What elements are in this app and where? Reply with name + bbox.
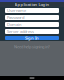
button[interactable]: Domain	[5, 22, 59, 27]
staticText: Server address	[7, 29, 34, 34]
staticText: Need help signing in?	[14, 44, 50, 49]
button[interactable]: Username	[5, 8, 59, 13]
button[interactable]: Password	[5, 15, 59, 20]
staticText: Sign In	[25, 35, 39, 41]
staticText: Password	[7, 15, 24, 20]
button[interactable]: Server address	[5, 29, 59, 34]
button[interactable]: Sign In	[5, 36, 59, 40]
staticText: Application Login	[14, 2, 49, 7]
staticText: Username	[7, 8, 26, 13]
staticText: Domain	[7, 22, 21, 27]
